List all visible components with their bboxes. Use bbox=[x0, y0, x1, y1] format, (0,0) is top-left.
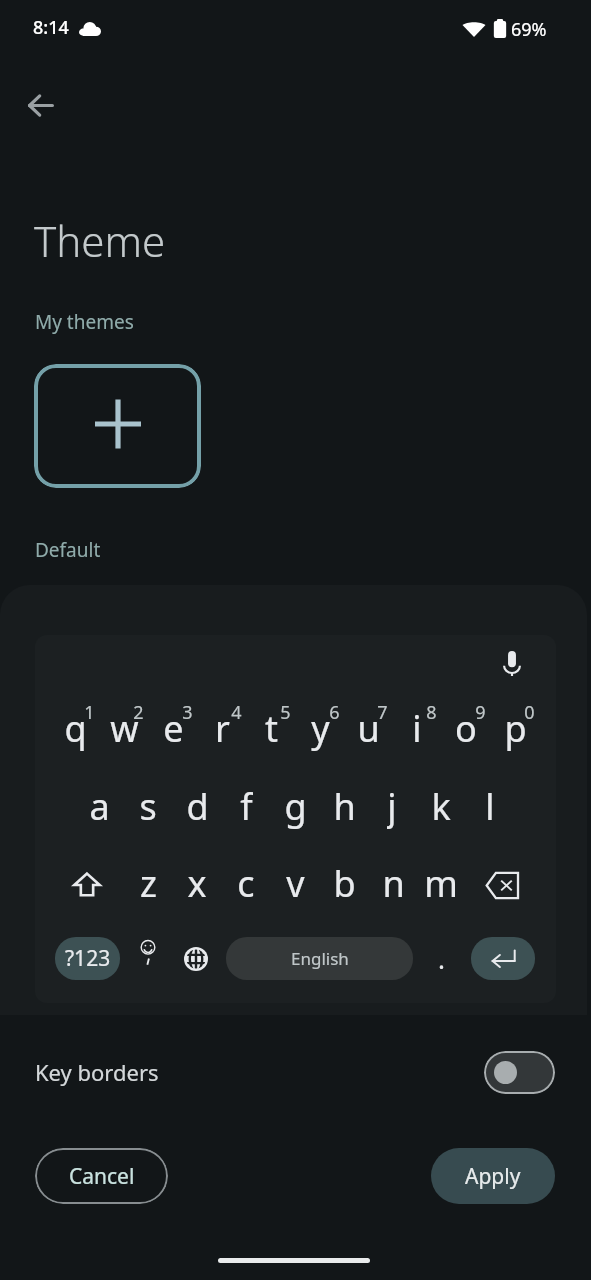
staticText: q bbox=[64, 704, 87, 752]
staticText: Cancel bbox=[69, 1162, 135, 1191]
button[interactable]: a bbox=[75, 782, 123, 830]
staticText: u bbox=[357, 704, 380, 752]
staticText: w bbox=[110, 704, 139, 752]
staticText: c bbox=[237, 859, 255, 907]
button[interactable]: s bbox=[124, 782, 172, 830]
button[interactable]: Voice input bbox=[490, 641, 534, 685]
staticText: a bbox=[89, 782, 110, 830]
button[interactable]: Key borders toggle, off bbox=[484, 1051, 555, 1094]
staticText: v bbox=[286, 859, 305, 907]
button[interactable]: o bbox=[442, 704, 490, 752]
staticText: Key borders bbox=[35, 1057, 159, 1087]
button[interactable]: w bbox=[100, 704, 148, 752]
staticText: 2 bbox=[133, 700, 144, 724]
button[interactable]: v bbox=[271, 859, 319, 907]
staticText: Theme bbox=[34, 212, 166, 269]
staticText: f bbox=[240, 782, 253, 830]
staticText: 69% bbox=[511, 17, 547, 42]
button[interactable]: z bbox=[124, 859, 172, 907]
button[interactable]: c bbox=[222, 859, 270, 907]
staticText: g bbox=[284, 782, 307, 830]
button[interactable]: g bbox=[271, 782, 319, 830]
button[interactable]: Emoji bbox=[127, 934, 169, 977]
button[interactable]: u bbox=[344, 704, 392, 752]
button[interactable]: Key borders bbox=[0, 1040, 591, 1104]
staticText: p bbox=[504, 704, 527, 752]
button[interactable]: Back bbox=[19, 83, 63, 127]
staticText: 6 bbox=[329, 700, 340, 724]
staticText: English bbox=[291, 947, 349, 970]
staticText: x bbox=[187, 859, 207, 907]
button[interactable]: Language bbox=[175, 937, 217, 980]
staticText: h bbox=[333, 782, 356, 830]
button[interactable]: Enter bbox=[471, 937, 535, 980]
staticText: i bbox=[412, 704, 422, 752]
button[interactable]: ?123 bbox=[55, 937, 120, 980]
button[interactable]: Add theme bbox=[34, 364, 201, 488]
staticText: m bbox=[424, 859, 458, 907]
button[interactable]: English bbox=[226, 937, 413, 980]
staticText: n bbox=[382, 859, 405, 907]
staticText: t bbox=[265, 704, 278, 752]
button[interactable]: Cancel bbox=[35, 1148, 168, 1204]
staticText: ?123 bbox=[65, 944, 111, 973]
button[interactable]: e bbox=[149, 704, 197, 752]
button[interactable]: r bbox=[198, 704, 246, 752]
button[interactable]: l bbox=[466, 782, 514, 830]
staticText: k bbox=[431, 782, 451, 830]
staticText: z bbox=[140, 859, 157, 907]
staticText: 4 bbox=[231, 700, 242, 724]
staticText: My themes bbox=[35, 309, 134, 335]
button[interactable]: f bbox=[222, 782, 270, 830]
staticText: . bbox=[438, 941, 445, 976]
staticText: 8 bbox=[426, 700, 437, 724]
staticText: 8:14 bbox=[33, 15, 69, 40]
button[interactable]: y bbox=[296, 704, 344, 752]
button[interactable]: q bbox=[51, 704, 99, 752]
button[interactable]: x bbox=[173, 859, 221, 907]
staticText: 1 bbox=[84, 700, 95, 724]
staticText: 3 bbox=[182, 700, 193, 724]
button[interactable]: p bbox=[491, 704, 539, 752]
staticText: s bbox=[139, 782, 157, 830]
button[interactable]: Period bbox=[423, 937, 459, 980]
staticText: j bbox=[387, 782, 397, 830]
staticText: e bbox=[163, 704, 184, 752]
button[interactable]: t bbox=[247, 704, 295, 752]
staticText: b bbox=[333, 859, 356, 907]
staticText: d bbox=[186, 782, 209, 830]
staticText: o bbox=[455, 704, 477, 752]
button[interactable]: Backspace bbox=[477, 860, 527, 910]
button[interactable]: i bbox=[393, 704, 441, 752]
button[interactable]: j bbox=[368, 782, 416, 830]
staticText: Default bbox=[35, 537, 101, 563]
button[interactable]: Apply bbox=[431, 1148, 555, 1204]
button[interactable]: m bbox=[417, 859, 465, 907]
button[interactable]: n bbox=[369, 859, 417, 907]
button[interactable]: h bbox=[320, 782, 368, 830]
staticText: 9 bbox=[475, 700, 486, 724]
staticText: y bbox=[311, 704, 330, 752]
staticText: 5 bbox=[280, 700, 291, 724]
staticText: 7 bbox=[377, 700, 388, 724]
staticText: l bbox=[485, 782, 495, 830]
button[interactable]: b bbox=[320, 859, 368, 907]
staticText: Apply bbox=[465, 1162, 521, 1191]
button[interactable]: d bbox=[173, 782, 221, 830]
button[interactable]: k bbox=[417, 782, 465, 830]
button[interactable]: Shift bbox=[65, 863, 109, 907]
staticText: r bbox=[215, 704, 230, 752]
staticText: 0 bbox=[524, 700, 535, 724]
